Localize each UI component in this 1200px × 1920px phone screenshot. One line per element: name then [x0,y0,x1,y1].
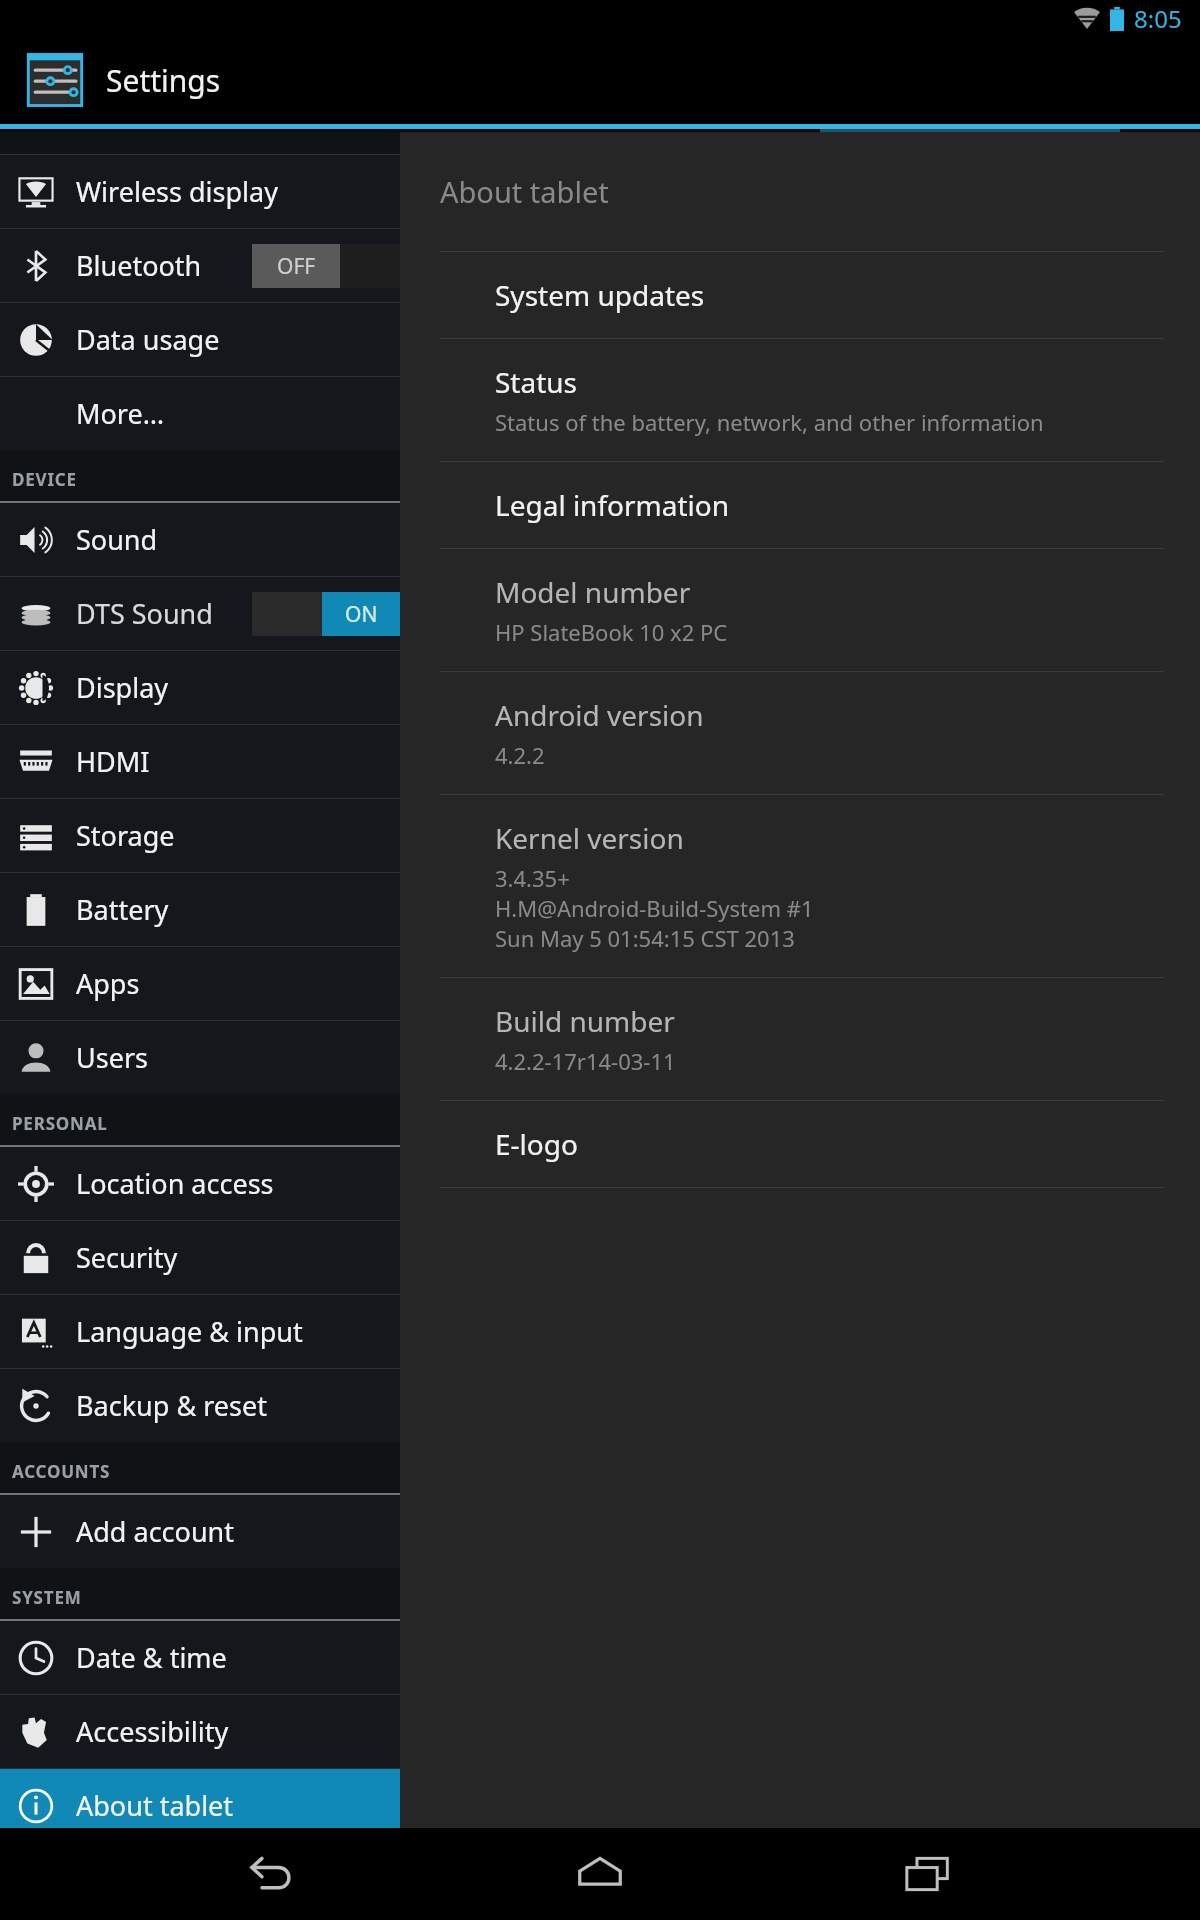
staticText: Data usage [76,321,220,358]
staticText: 4.2.2 [495,740,545,770]
staticText: Status of the battery, network, and othe… [495,407,1044,437]
staticText: About tablet [76,1787,234,1824]
button[interactable]: Display [0,651,400,724]
staticText: Status [495,363,578,401]
staticText: Storage [76,817,175,854]
staticText: Date & time [76,1639,227,1676]
button[interactable]: Backup & reset [0,1369,400,1442]
staticText: DEVICE [12,468,77,491]
staticText: HDMI [76,743,150,780]
staticText: Android version [495,696,704,734]
button[interactable]: Kernel version [400,795,1200,977]
staticText: Backup & reset [76,1387,267,1424]
button[interactable]: Security [0,1221,400,1294]
button[interactable]: Bluetooth off [252,244,400,288]
staticText: System updates [495,276,705,314]
button[interactable]: Bluetooth [0,229,400,302]
staticText: Apps [76,965,140,1002]
staticText: ACCOUNTS [12,1460,111,1483]
button[interactable]: Wireless display [0,155,400,228]
staticText: Sound [76,521,158,558]
button[interactable]: Status [400,339,1200,461]
button[interactable]: DTS Sound [0,577,400,650]
staticText: Display [76,669,169,706]
staticText: Kernel version [495,819,684,857]
button[interactable]: Model number [400,549,1200,671]
button[interactable]: Android version [400,672,1200,794]
button[interactable]: Legal information [400,462,1200,548]
staticText: Legal information [495,486,730,524]
button[interactable]: Apps [0,947,400,1020]
staticText: Security [76,1239,178,1276]
button[interactable]: E-logo [400,1101,1200,1187]
staticText: DTS Sound [76,595,213,632]
button[interactable]: Sound [0,503,400,576]
button[interactable]: Back [218,1828,328,1920]
staticText: About tablet [440,172,609,211]
staticText: OFF [277,252,316,281]
button[interactable]: Language & input [0,1295,400,1368]
button[interactable]: Settings [0,36,1200,124]
staticText: 3.4.35+ H.M@Android-Build-System #1 Sun … [495,863,814,953]
button[interactable]: Users [0,1021,400,1094]
staticText: SYSTEM [12,1586,82,1609]
button[interactable]: More… [0,377,400,450]
button[interactable]: HDMI [0,725,400,798]
button[interactable]: System updates [400,252,1200,338]
button[interactable]: Build number [400,978,1200,1100]
button[interactable]: Location access [0,1147,400,1220]
staticText: More… [76,395,165,432]
button[interactable]: Battery [0,873,400,946]
staticText: E-logo [495,1125,578,1163]
staticText: 8:05 [1134,2,1182,35]
button[interactable]: Home [545,1828,655,1920]
button[interactable]: Storage [0,799,400,872]
staticText: Battery [76,891,169,928]
button[interactable]: Recent apps [873,1828,983,1920]
button[interactable]: Data usage [0,303,400,376]
staticText: Accessibility [76,1713,229,1750]
staticText: Bluetooth [76,247,202,284]
staticText: 4.2.2-17r14-03-11 [495,1046,676,1076]
button[interactable]: Accessibility [0,1695,400,1768]
button[interactable]: DTS Sound on [252,592,400,636]
staticText: Add account [76,1513,235,1550]
staticText: Location access [76,1165,274,1202]
staticText: PERSONAL [12,1112,108,1135]
staticText: Model number [495,573,691,611]
staticText: Build number [495,1002,675,1040]
staticText: Language & input [76,1313,303,1350]
staticText: ON [345,600,378,629]
button[interactable]: About tablet [0,1769,400,1828]
staticText: Settings [106,60,221,101]
staticText: HP SlateBook 10 x2 PC [495,617,728,647]
button[interactable]: Add account [0,1495,400,1568]
button[interactable]: Date & time [0,1621,400,1694]
staticText: Wireless display [76,173,278,210]
staticText: Users [76,1039,148,1076]
